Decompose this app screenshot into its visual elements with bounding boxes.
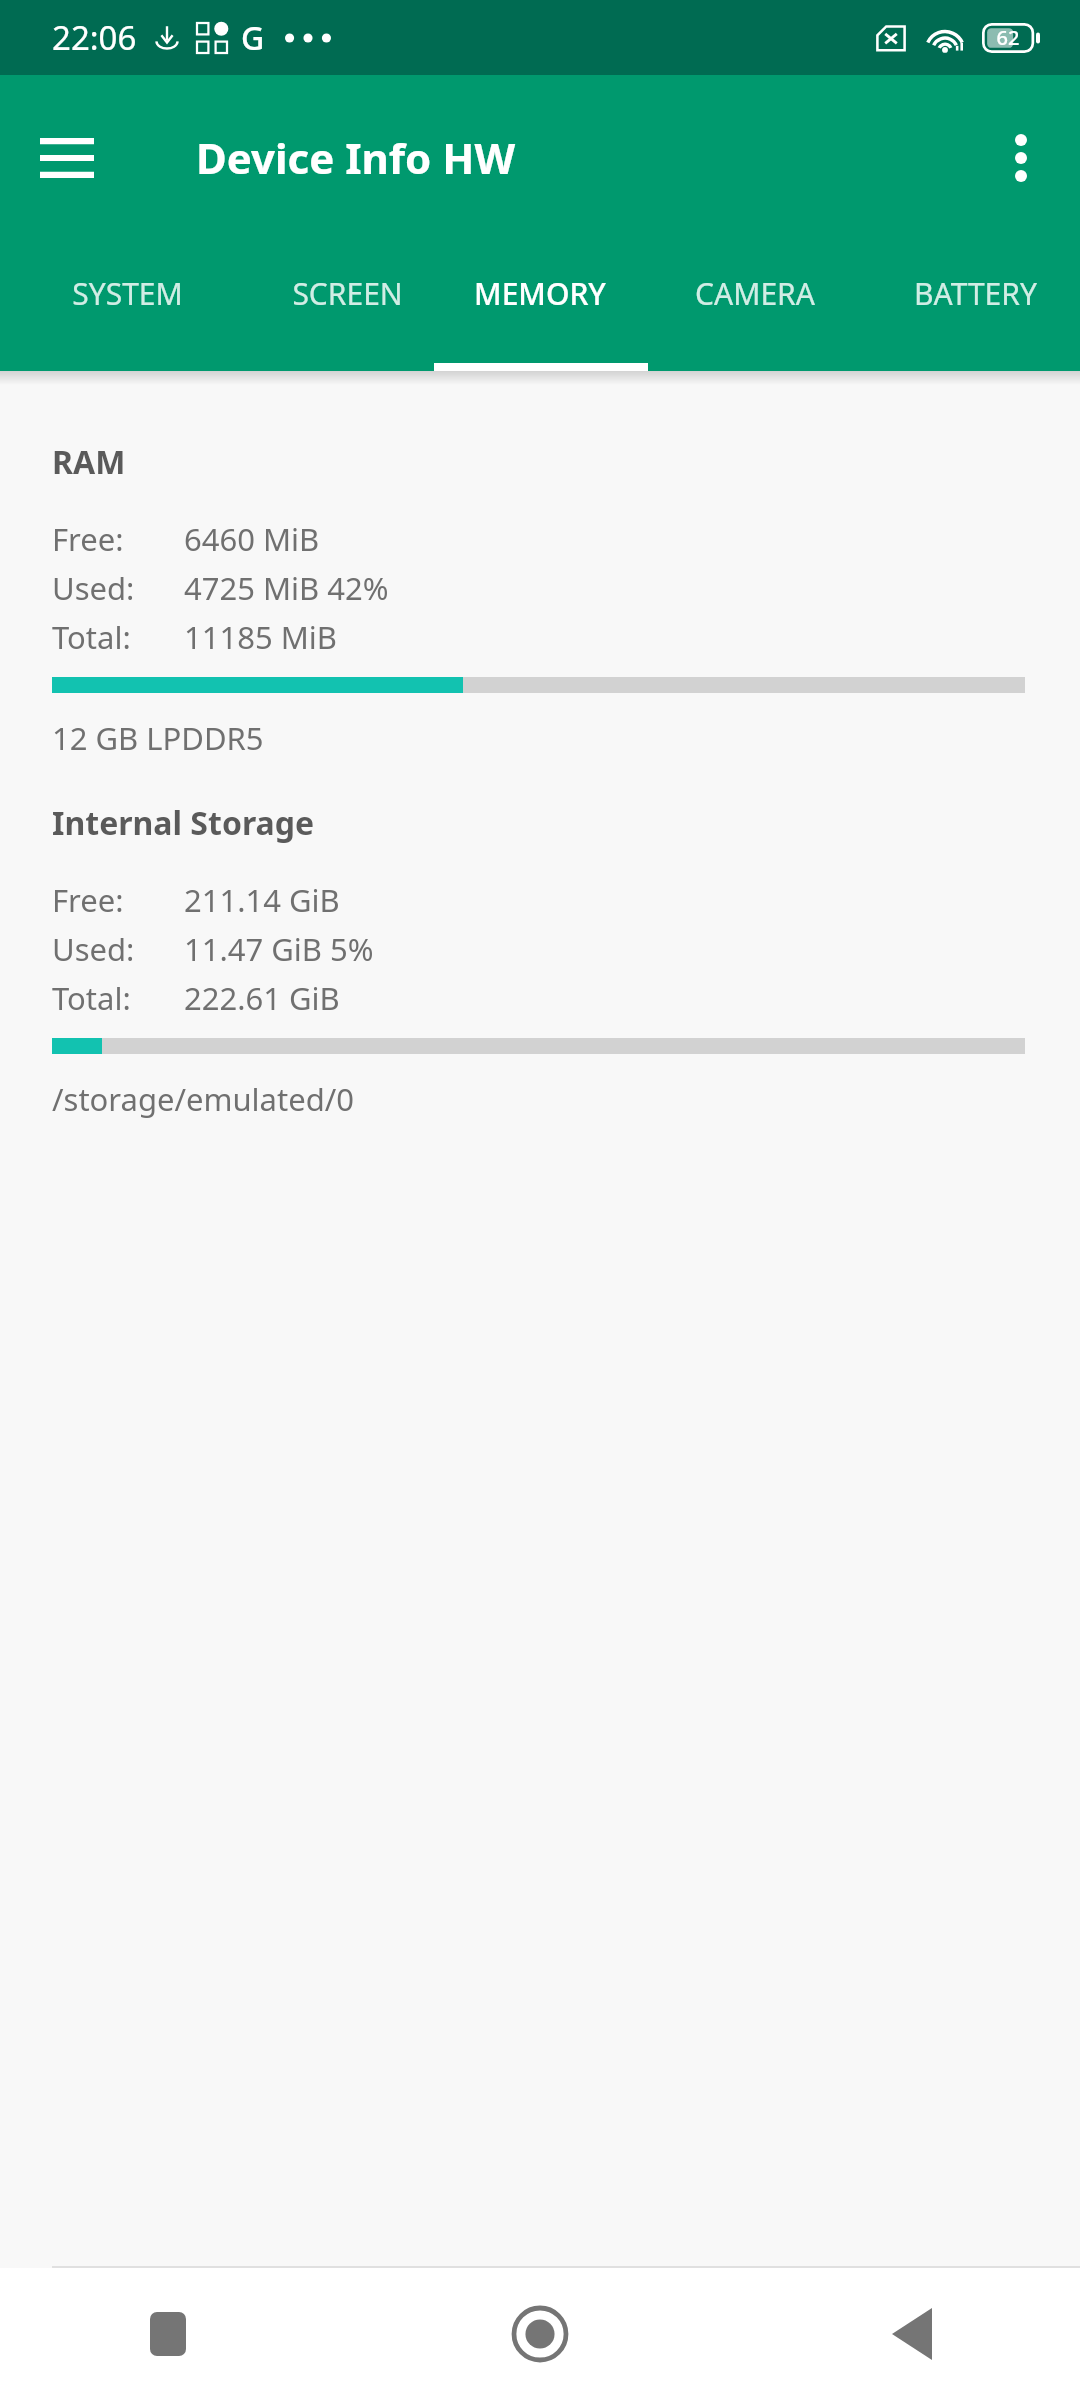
staticText: /storage/emulated/0 (52, 1078, 355, 1120)
staticText: Free: (52, 518, 124, 560)
button[interactable]: Back (864, 2286, 960, 2382)
button[interactable]: Home (492, 2286, 588, 2382)
button[interactable]: Internal Storage (0, 801, 1080, 1120)
button[interactable]: CAMERA (640, 240, 870, 371)
staticText: 222.61 GiB (184, 977, 340, 1019)
staticText: G (241, 16, 265, 60)
staticText: Used: (52, 928, 135, 970)
staticText: 211.14 GiB (184, 879, 340, 921)
staticText: Free: (52, 879, 124, 921)
button[interactable]: MEMORY (440, 240, 640, 371)
button[interactable]: SYSTEM (0, 240, 254, 371)
staticText: SYSTEM (72, 273, 183, 314)
staticText: 62 (982, 24, 1034, 51)
button[interactable]: Recent apps (120, 2286, 216, 2382)
staticText: 12 GB LPDDR5 (52, 717, 264, 759)
staticText: 11.47 GiB 5% (184, 928, 374, 970)
staticText: Total: (52, 616, 131, 658)
button[interactable]: BATTERY (870, 240, 1080, 371)
button[interactable]: RAM (0, 440, 1080, 759)
button[interactable]: Open navigation drawer (28, 119, 106, 197)
staticText: Total: (52, 977, 131, 1019)
button[interactable]: More options (982, 119, 1060, 197)
staticText: Device Info HW (196, 129, 515, 186)
staticText: Used: (52, 567, 135, 609)
staticText: 22:06 (52, 15, 137, 60)
staticText: 11185 MiB (184, 616, 337, 658)
staticText: 4725 MiB 42% (184, 567, 389, 609)
staticText: CAMERA (695, 273, 815, 314)
staticText: 6460 MiB (184, 518, 320, 560)
staticText: SCREEN (292, 273, 403, 314)
staticText: BATTERY (914, 273, 1037, 314)
button[interactable]: SCREEN (254, 240, 440, 371)
staticText: RAM (52, 440, 126, 484)
staticText: Internal Storage (52, 801, 315, 845)
staticText: MEMORY (474, 273, 606, 314)
